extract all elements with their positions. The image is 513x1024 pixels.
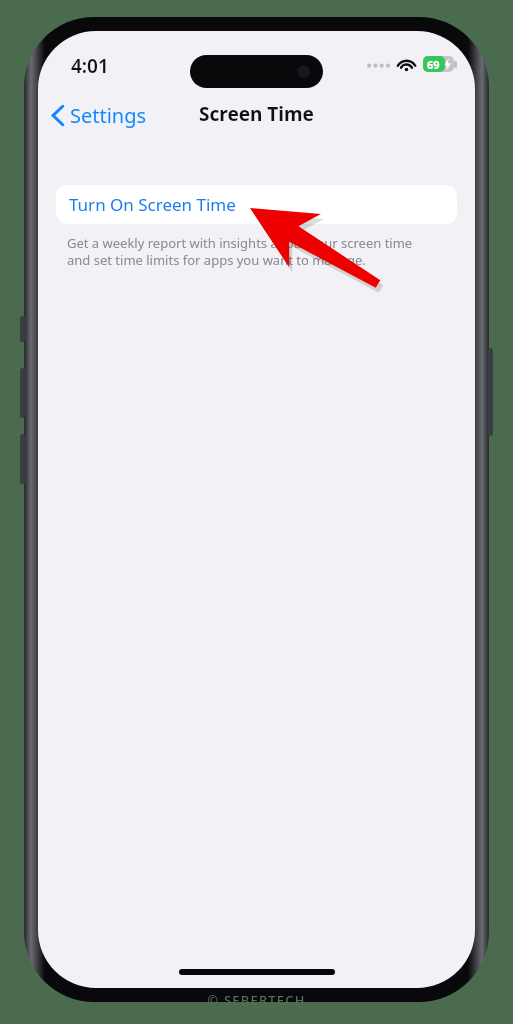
staticText: Screen Time: [199, 101, 314, 127]
other: Arrow pointing to Turn On Screen Time: [0, 0, 513, 1024]
staticText: Settings: [70, 102, 147, 129]
staticText: 4:01: [71, 53, 109, 79]
staticText: © SEBERTECH: [207, 991, 306, 1009]
staticText: Get a weekly report with insights about …: [67, 234, 413, 269]
button[interactable]: Settings: [45, 98, 153, 133]
staticText: 69: [427, 57, 440, 72]
staticText: Turn On Screen Time: [69, 193, 236, 216]
button[interactable]: Turn On Screen Time: [56, 185, 457, 224]
